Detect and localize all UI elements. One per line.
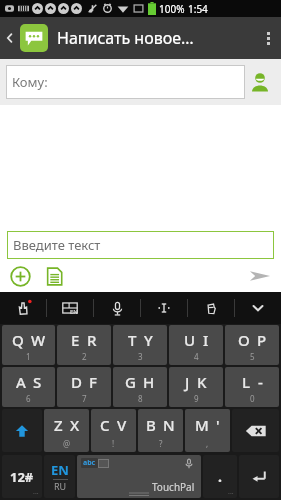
staticText: 9 xyxy=(194,393,199,404)
staticText: 2 xyxy=(82,351,87,362)
button[interactable]: Send xyxy=(244,260,276,292)
staticText: I xyxy=(203,330,209,350)
staticText: Кому: xyxy=(12,73,48,91)
button[interactable]: Cursor xyxy=(141,292,187,324)
staticText: 5 xyxy=(250,351,255,362)
staticText: M xyxy=(195,415,209,435)
staticText: EN xyxy=(70,308,78,316)
staticText: J xyxy=(185,372,190,392)
staticText: 7 xyxy=(82,393,87,404)
staticText: 12# xyxy=(10,468,34,486)
button[interactable]: Handwriting xyxy=(0,292,46,324)
staticText: N xyxy=(163,415,175,435)
button[interactable]: Enter xyxy=(239,455,279,498)
button[interactable]: A xyxy=(2,367,55,407)
button[interactable]: More options xyxy=(255,17,281,59)
staticText: - xyxy=(258,372,263,392)
button[interactable]: Add contact xyxy=(245,65,275,99)
button[interactable]: Gesture xyxy=(188,292,234,324)
button[interactable]: B xyxy=(138,409,183,452)
staticText: A xyxy=(16,372,26,392)
button[interactable]: Кому: xyxy=(6,65,245,99)
staticText: ? xyxy=(159,438,163,449)
staticText: X xyxy=(70,415,80,435)
staticText: 100% xyxy=(159,2,185,16)
staticText: TouchPal xyxy=(152,480,195,494)
staticText: W xyxy=(31,330,46,350)
staticText: Введите текст xyxy=(13,236,101,254)
staticText: D xyxy=(71,372,82,392)
staticText: RU xyxy=(54,480,67,492)
staticText: P xyxy=(257,330,267,350)
button[interactable]: Shift xyxy=(2,409,42,452)
button[interactable]: J xyxy=(169,367,223,407)
staticText: O xyxy=(238,330,250,350)
button[interactable]: Backspace xyxy=(232,409,279,452)
button[interactable]: O xyxy=(225,325,279,365)
button[interactable]: Введите текст xyxy=(7,231,274,259)
button[interactable]: Language EN xyxy=(47,292,93,324)
staticText: @ xyxy=(63,438,71,449)
staticText: ... xyxy=(228,487,234,497)
button[interactable]: Hide keyboard xyxy=(235,292,281,324)
staticText: 8 xyxy=(138,393,143,404)
staticText: 4 xyxy=(194,351,199,362)
staticText: 6 xyxy=(26,393,31,404)
staticText: B xyxy=(146,415,156,435)
staticText: L xyxy=(242,372,251,392)
staticText: R xyxy=(87,330,97,350)
button[interactable]: D xyxy=(57,367,111,407)
staticText: , xyxy=(206,438,209,449)
staticText: Y xyxy=(144,330,153,350)
staticText: ... xyxy=(33,487,39,497)
button[interactable]: . xyxy=(203,455,237,498)
button[interactable]: G xyxy=(113,367,167,407)
button[interactable]: Space xyxy=(77,455,201,498)
button[interactable]: Switch language xyxy=(44,455,75,498)
button[interactable]: M xyxy=(185,409,230,452)
button[interactable]: 12# xyxy=(2,455,42,498)
staticText: 3 xyxy=(138,351,143,362)
button[interactable]: E xyxy=(57,325,111,365)
button[interactable]: Attach xyxy=(5,261,35,291)
staticText: Q xyxy=(12,330,24,350)
button[interactable]: Back xyxy=(0,17,20,59)
button[interactable]: T xyxy=(113,325,167,365)
staticText: . xyxy=(218,467,222,486)
staticText: abc xyxy=(83,458,96,468)
button[interactable]: Template xyxy=(39,261,69,291)
staticText: F xyxy=(89,372,97,392)
staticText: S xyxy=(33,372,42,392)
staticText: H xyxy=(143,372,155,392)
button[interactable]: L xyxy=(225,367,279,407)
button[interactable]: U xyxy=(169,325,223,365)
staticText: U xyxy=(184,330,196,350)
staticText: ' xyxy=(216,415,220,435)
button[interactable]: Voice input xyxy=(94,292,140,324)
staticText: C xyxy=(100,415,110,435)
button[interactable]: Z xyxy=(44,409,89,452)
staticText: Z xyxy=(54,415,63,435)
staticText: K xyxy=(197,372,207,392)
staticText: 1 xyxy=(26,351,31,362)
staticText: ! xyxy=(112,438,115,449)
staticText: EN xyxy=(51,461,69,479)
button[interactable]: Q xyxy=(2,325,55,365)
staticText: Написать новое… xyxy=(57,27,194,49)
staticText: T xyxy=(128,330,137,350)
staticText: V xyxy=(117,415,127,435)
staticText: 1:54 xyxy=(188,2,208,16)
staticText: G xyxy=(125,372,136,392)
button[interactable]: C xyxy=(91,409,136,452)
staticText: 0 xyxy=(250,393,255,404)
staticText: E xyxy=(71,330,80,350)
